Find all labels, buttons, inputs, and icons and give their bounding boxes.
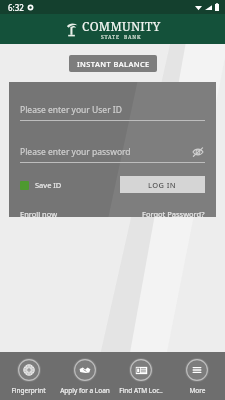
staticText: Forgot Password? (142, 209, 205, 217)
button[interactable]: Please enter your User ID (20, 100, 205, 120)
button[interactable]: INSTANT BALANCE (69, 55, 157, 72)
staticText: LOG IN (148, 180, 177, 190)
staticText: Enroll now (20, 209, 58, 217)
staticText: Please enter your password (20, 146, 191, 158)
staticText: COMMUNITY (82, 18, 161, 34)
button[interactable]: Apply for a Loan (57, 352, 113, 400)
staticText: Apply for a Loan (60, 386, 110, 395)
staticText: More (189, 386, 206, 395)
button[interactable]: LOG IN (120, 176, 205, 193)
staticText: Find ATM Loc.. (119, 386, 163, 395)
button[interactable]: More (169, 352, 225, 400)
button[interactable]: Find ATM Loc.. (113, 352, 169, 400)
button[interactable]: Fingerprint (0, 352, 57, 400)
button[interactable]: Save ID (20, 180, 62, 190)
staticText: 6:32 (8, 2, 24, 13)
button[interactable]: Forgot Password? (142, 209, 205, 217)
staticText: Fingerprint (11, 386, 46, 395)
button[interactable]: Enroll now (20, 209, 58, 217)
staticText: STATE BANK (101, 34, 142, 41)
staticText: Save ID (35, 180, 62, 190)
button[interactable]: Show password (191, 145, 205, 159)
button[interactable]: Please enter your password (20, 142, 205, 162)
staticText: INSTANT BALANCE (77, 59, 150, 69)
staticText: Please enter your User ID (20, 104, 122, 116)
